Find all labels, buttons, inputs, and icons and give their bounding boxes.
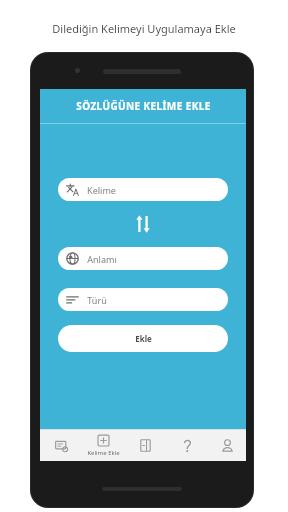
button[interactable]: Anlamı [58, 247, 228, 270]
button[interactable]: Sözlük [124, 429, 166, 461]
staticText: Anlamı [87, 253, 117, 265]
staticText: Dilediğin Kelimeyi Uygulamaya Ekle [52, 21, 236, 36]
staticText: Kelime [87, 184, 116, 196]
button[interactable]: Yardım [166, 429, 208, 461]
button[interactable]: Türü [58, 288, 228, 311]
staticText: Türü [87, 294, 107, 306]
staticText: SÖZLÜĞÜNE KELİME EKLE [76, 99, 211, 113]
button[interactable]: Profil [208, 429, 246, 461]
button[interactable]: Kelime Ekle [82, 429, 124, 461]
button[interactable]: Ekle [58, 325, 228, 352]
staticText: Kelime Ekle [87, 449, 120, 457]
button[interactable]: Swap [131, 212, 155, 236]
button[interactable]: Kelime [58, 178, 228, 201]
staticText: Ekle [135, 333, 152, 344]
button[interactable]: Kelimelerim [40, 429, 82, 461]
